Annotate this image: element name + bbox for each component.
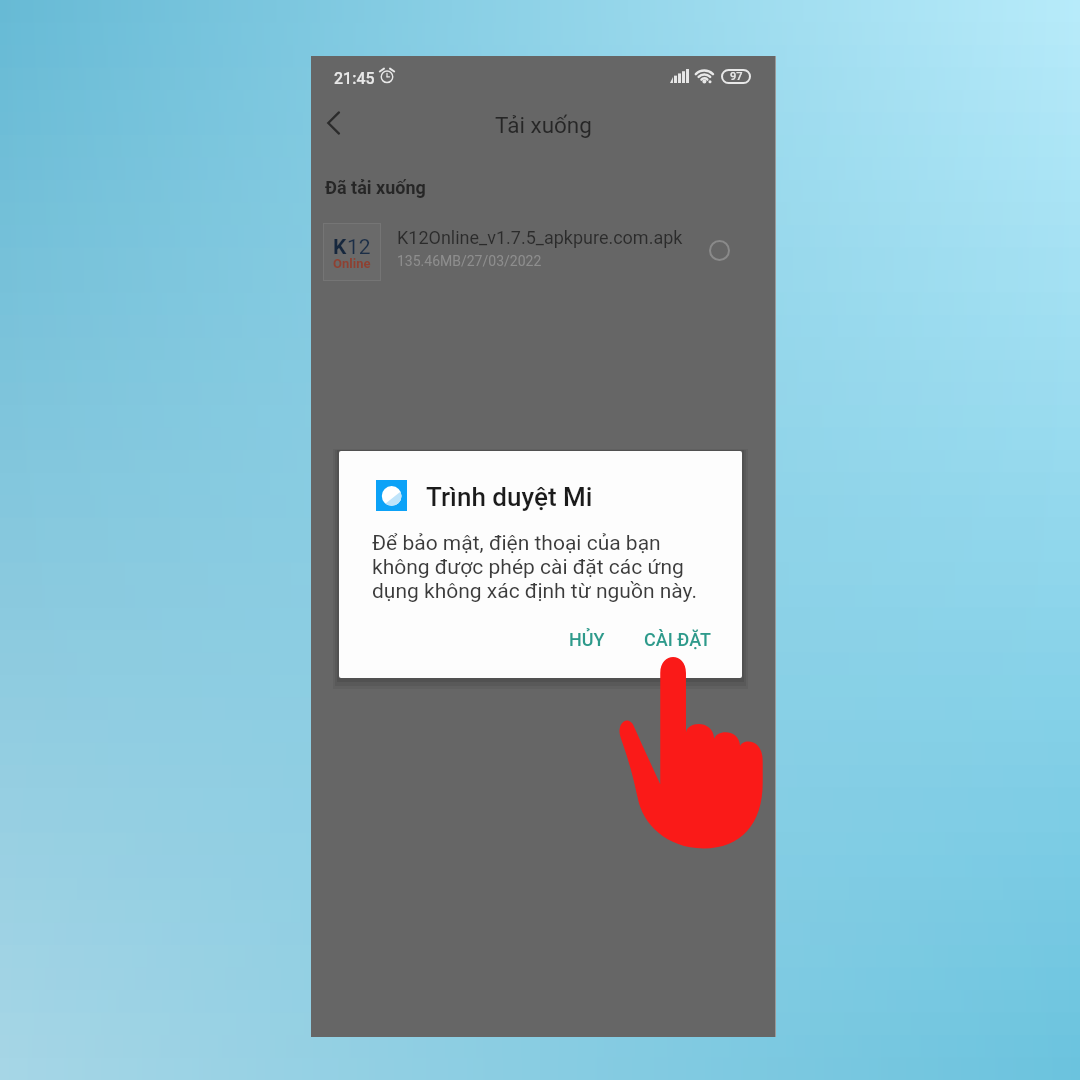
staticText: K [333,235,347,260]
staticText: 97 [730,70,743,83]
button[interactable]: Back [311,99,359,147]
staticText: 135.46MB/27/03/2022 [397,253,542,269]
staticText: 12 [347,235,371,260]
staticText: CÀI ĐẶT [644,629,711,650]
staticText: Đã tải xuống [325,177,426,198]
staticText: Online [333,256,371,271]
button[interactable]: K [311,218,776,288]
button[interactable]: Select file [709,240,730,261]
staticText: Để bảo mật, điện thoại của bạn không đượ… [372,531,697,603]
staticText: Trình duyệt Mi [426,482,593,512]
button[interactable]: HỦY [553,617,621,661]
staticText: HỦY [569,629,605,650]
staticText: Tải xuống [495,112,592,138]
staticText: 21:45 [334,69,375,88]
button[interactable]: CÀI ĐẶT [629,617,725,661]
staticText: K12Online_v1.7.5_apkpure.com.apk [397,227,683,248]
